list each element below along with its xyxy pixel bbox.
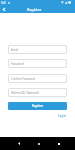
button[interactable]: Home <box>29 137 49 150</box>
staticText: Referral ID (Optional) <box>11 91 39 95</box>
staticText: Register <box>32 104 44 108</box>
button[interactable]: Email <box>8 45 67 54</box>
button[interactable]: Password <box>8 59 67 68</box>
button[interactable]: Log In <box>56 113 69 119</box>
staticText: Email <box>11 48 19 52</box>
staticText: 9:41 <box>1 1 7 5</box>
button[interactable]: Register <box>8 102 67 110</box>
staticText: Password <box>11 62 24 66</box>
staticText: Log In <box>58 114 67 118</box>
staticText: Confirm Password <box>11 77 36 81</box>
button[interactable]: Confirm Password <box>8 74 67 83</box>
staticText: Register <box>27 7 42 12</box>
button[interactable]: Back <box>9 137 29 150</box>
button[interactable]: Recents <box>49 137 69 150</box>
button[interactable]: Back <box>0 5 8 13</box>
button[interactable]: Referral ID (Optional) <box>8 88 67 97</box>
